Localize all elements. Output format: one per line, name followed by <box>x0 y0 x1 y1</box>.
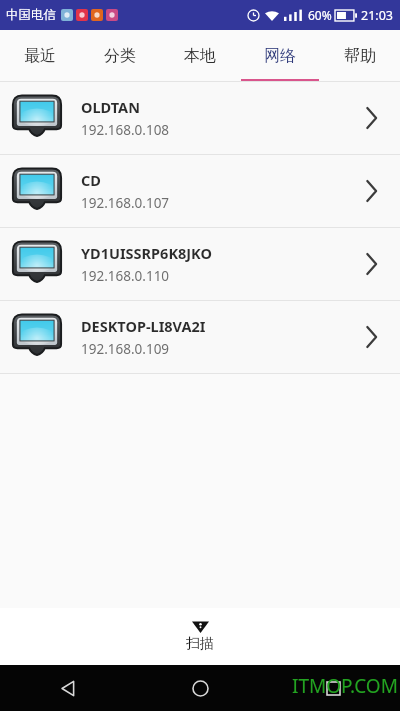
staticText: OLDTAN <box>81 97 140 117</box>
button[interactable]: DESKTOP-LI8VA2I <box>0 301 400 374</box>
button[interactable]: OLDTAN <box>0 82 400 155</box>
button[interactable]: Scan <box>0 608 400 665</box>
staticText: 192.168.0.107 <box>81 194 170 212</box>
button[interactable]: 分类 <box>80 30 160 82</box>
button[interactable]: CD <box>0 155 400 228</box>
staticText: CD <box>81 170 101 190</box>
staticText: 60% <box>308 7 332 23</box>
button[interactable]: Recents <box>267 665 400 711</box>
staticText: 帮助 <box>344 46 376 66</box>
staticText: 21:03 <box>361 7 393 24</box>
staticText: 网络 <box>264 46 296 66</box>
staticText: ITMOP.COM <box>292 673 398 699</box>
other: Scan <box>192 620 209 633</box>
button[interactable]: 本地 <box>160 30 240 82</box>
button[interactable]: 网络 <box>240 30 320 82</box>
staticText: 192.168.0.109 <box>81 340 170 358</box>
button[interactable]: Home <box>134 665 267 711</box>
staticText: 最近 <box>24 46 56 66</box>
staticText: 本地 <box>184 46 216 66</box>
staticText: YD1UISSRP6K8JKO <box>81 243 212 263</box>
staticText: 192.168.0.108 <box>81 121 170 139</box>
staticText: 扫描 <box>186 635 214 653</box>
button[interactable]: 帮助 <box>320 30 400 82</box>
staticText: 分类 <box>104 46 136 66</box>
staticText: DESKTOP-LI8VA2I <box>81 316 206 336</box>
staticText: 192.168.0.110 <box>81 267 170 285</box>
button[interactable]: YD1UISSRP6K8JKO <box>0 228 400 301</box>
button[interactable]: 最近 <box>0 30 80 82</box>
button[interactable]: Back <box>0 665 134 711</box>
staticText: 中国电信 <box>6 7 56 23</box>
